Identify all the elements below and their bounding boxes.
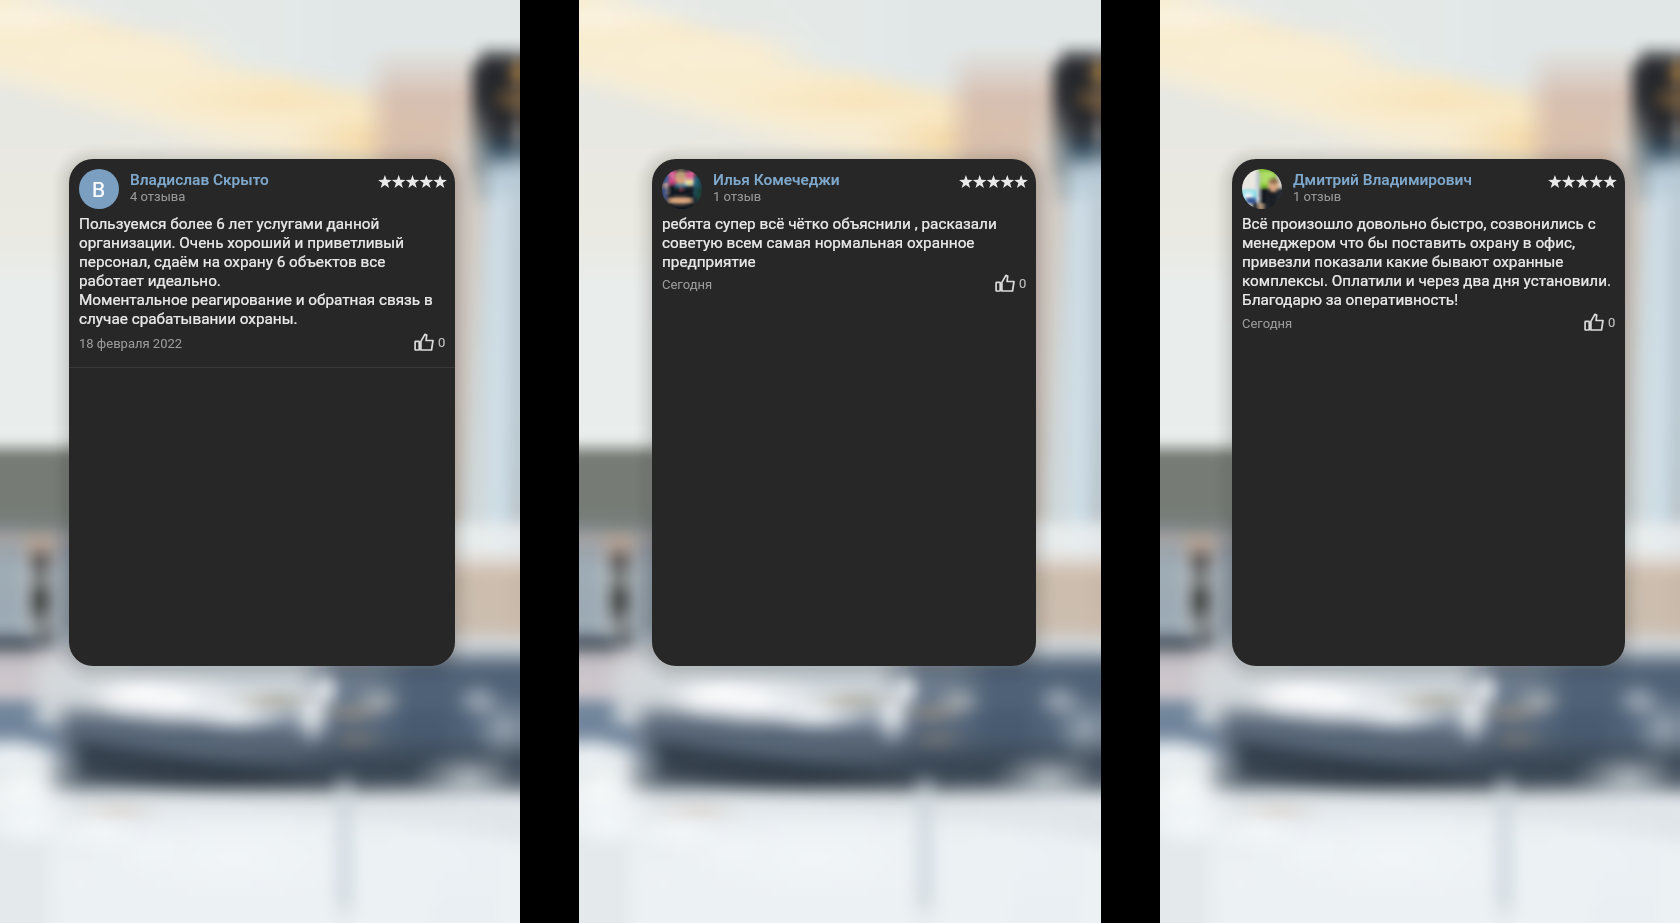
- button[interactable]: Дмитрий Владимирович: [1232, 159, 1625, 666]
- staticText: Владислав Скрыто: [130, 171, 269, 189]
- staticText: Всё произошло довольно быстро, созвонили…: [1242, 214, 1615, 309]
- staticText: Сегодня: [662, 277, 713, 292]
- button[interactable]: Like this review: [1584, 312, 1616, 332]
- staticText: Пользуемся более 6 лет услугами данной о…: [79, 214, 445, 328]
- button[interactable]: Like this review: [414, 332, 446, 352]
- button[interactable]: Илья Комечеджи: [652, 159, 1036, 666]
- staticText: ребята супер всё чётко объяснили , раска…: [662, 214, 1026, 271]
- button[interactable]: B: [69, 159, 455, 666]
- staticText: Дмитрий Владимирович: [1293, 171, 1472, 189]
- staticText: 1 отзыв: [1293, 189, 1342, 204]
- button[interactable]: Like this review: [995, 273, 1027, 293]
- staticText: 1 отзыв: [713, 189, 762, 204]
- staticText: B: [92, 177, 106, 202]
- staticText: 4 отзыва: [130, 189, 186, 204]
- staticText: Сегодня: [1242, 316, 1293, 331]
- staticText: 0: [1608, 315, 1616, 330]
- staticText: 18 февраля 2022: [79, 336, 183, 351]
- staticText: 0: [438, 335, 446, 350]
- staticText: 0: [1019, 276, 1027, 291]
- staticText: Илья Комечеджи: [713, 171, 840, 189]
